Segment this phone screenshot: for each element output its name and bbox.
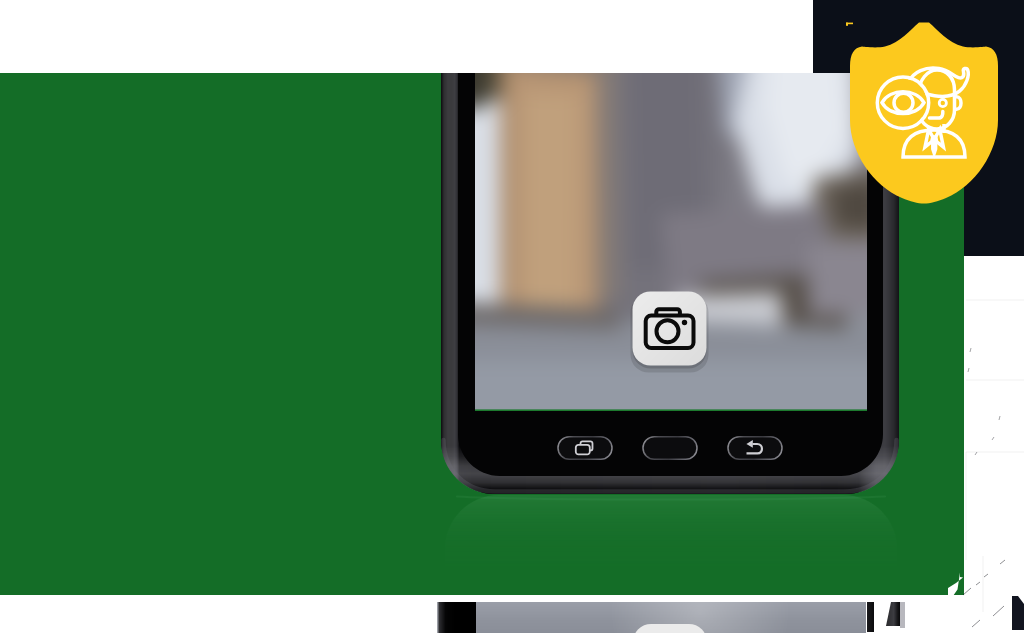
button[interactable]: Protection verified (850, 22, 998, 204)
button[interactable]: Back (728, 437, 783, 460)
other: Rugged tablet promotional banner (0, 0, 1024, 633)
button[interactable]: Home (643, 437, 698, 460)
button[interactable]: Open Camera (633, 292, 705, 364)
button[interactable]: Recent apps (558, 437, 613, 460)
